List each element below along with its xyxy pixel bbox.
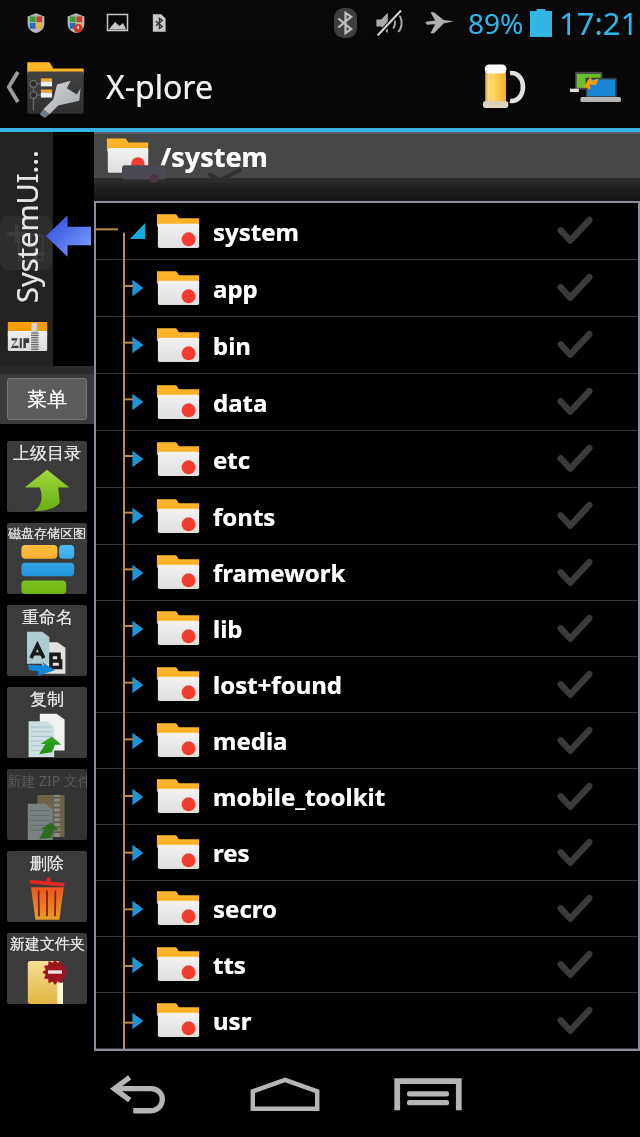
- staticText: 磁盘存储区图: [8, 525, 86, 541]
- button[interactable]: secro: [96, 881, 638, 936]
- button[interactable]: 菜单: [7, 378, 87, 420]
- staticText: tts: [213, 948, 246, 981]
- button[interactable]: tts: [96, 937, 638, 992]
- button[interactable]: Recent apps: [356, 1051, 499, 1137]
- button[interactable]: Back: [70, 1051, 213, 1137]
- staticText: 重命名: [22, 607, 73, 628]
- staticText: 89%: [468, 4, 524, 42]
- button[interactable]: app: [96, 260, 638, 316]
- button[interactable]: Up: [0, 48, 92, 126]
- staticText: mobile_toolkit: [213, 780, 386, 813]
- staticText: 复制: [30, 689, 64, 710]
- button[interactable]: 删除: [7, 851, 87, 922]
- staticText: res: [213, 836, 250, 869]
- button[interactable]: 上级目录: [7, 441, 87, 512]
- button[interactable]: mobile_toolkit: [96, 769, 638, 824]
- button[interactable]: /system: [94, 134, 640, 178]
- staticText: framework: [213, 556, 346, 589]
- button[interactable]: 新建 ZIP 文件: [7, 769, 87, 840]
- staticText: app: [213, 272, 258, 305]
- button[interactable]: etc: [96, 431, 638, 487]
- staticText: data: [213, 386, 268, 419]
- staticText: usr: [213, 1004, 252, 1037]
- staticText: system: [213, 215, 299, 248]
- button[interactable]: media: [96, 713, 638, 768]
- button[interactable]: Home: [213, 1051, 356, 1137]
- button[interactable]: bin: [96, 317, 638, 373]
- staticText: 新建 ZIP 文件: [7, 771, 87, 790]
- button[interactable]: framework: [96, 545, 638, 600]
- button[interactable]: lost+found: [96, 657, 638, 712]
- staticText: 新建文件夹: [10, 935, 85, 954]
- staticText: etc: [213, 443, 251, 476]
- staticText: secro: [213, 892, 278, 925]
- staticText: media: [213, 724, 288, 757]
- staticText: SystemUI...: [7, 150, 46, 303]
- button[interactable]: 新建文件夹: [7, 933, 87, 1004]
- button[interactable]: res: [96, 825, 638, 880]
- staticText: X-plore: [106, 65, 213, 109]
- button[interactable]: 复制: [7, 687, 87, 758]
- staticText: lost+found: [213, 668, 342, 701]
- button[interactable]: Donate: [465, 52, 535, 122]
- button[interactable]: fonts: [96, 488, 638, 544]
- button[interactable]: 磁盘存储区图: [7, 523, 87, 594]
- button[interactable]: usr: [96, 993, 638, 1048]
- staticText: bin: [213, 329, 251, 362]
- staticText: 上级目录: [13, 443, 81, 464]
- staticText: 17:21: [559, 2, 639, 44]
- staticText: fonts: [213, 500, 276, 533]
- staticText: 删除: [30, 853, 64, 874]
- button[interactable]: 重命名: [7, 605, 87, 676]
- button[interactable]: system: [96, 203, 638, 259]
- button[interactable]: data: [96, 374, 638, 430]
- staticText: /system: [160, 138, 268, 175]
- staticText: lib: [213, 612, 243, 645]
- button[interactable]: PC file transfer: [561, 52, 631, 122]
- button[interactable]: lib: [96, 601, 638, 656]
- staticText: 菜单: [27, 387, 67, 412]
